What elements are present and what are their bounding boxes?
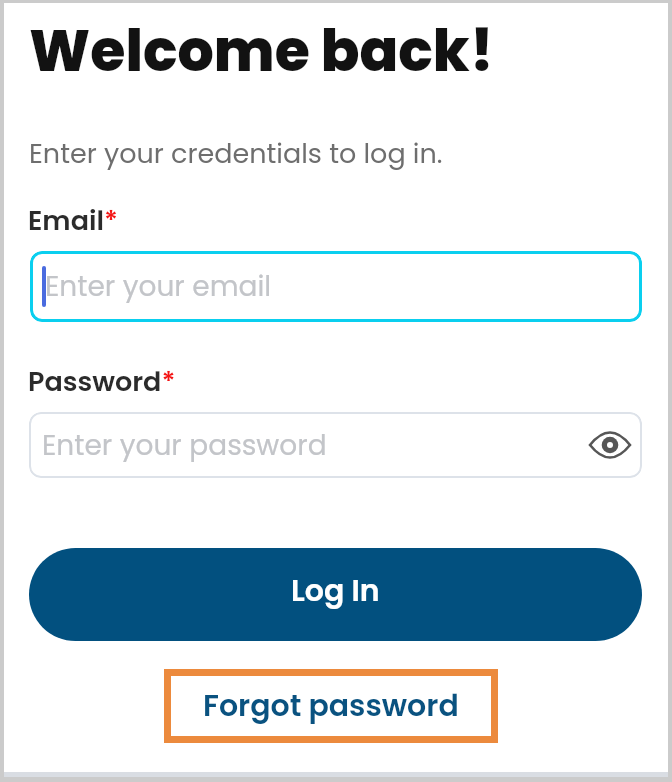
button[interactable]: Forgot password: [171, 676, 491, 736]
staticText: Enter your credentials to log in.: [29, 135, 443, 173]
staticText: Email*: [28, 202, 118, 240]
button[interactable]: Enter your email: [30, 251, 642, 322]
staticText: Log In: [291, 570, 380, 612]
button[interactable]: Enter your password: [29, 412, 642, 478]
staticText: Password*: [28, 363, 176, 401]
staticText: Enter your email: [45, 267, 272, 306]
staticText: Enter your password: [42, 426, 327, 465]
button[interactable]: Log In: [29, 548, 642, 641]
button[interactable]: [589, 431, 631, 459]
staticText: Welcome back!: [29, 11, 494, 91]
staticText: Forgot password: [203, 685, 459, 727]
